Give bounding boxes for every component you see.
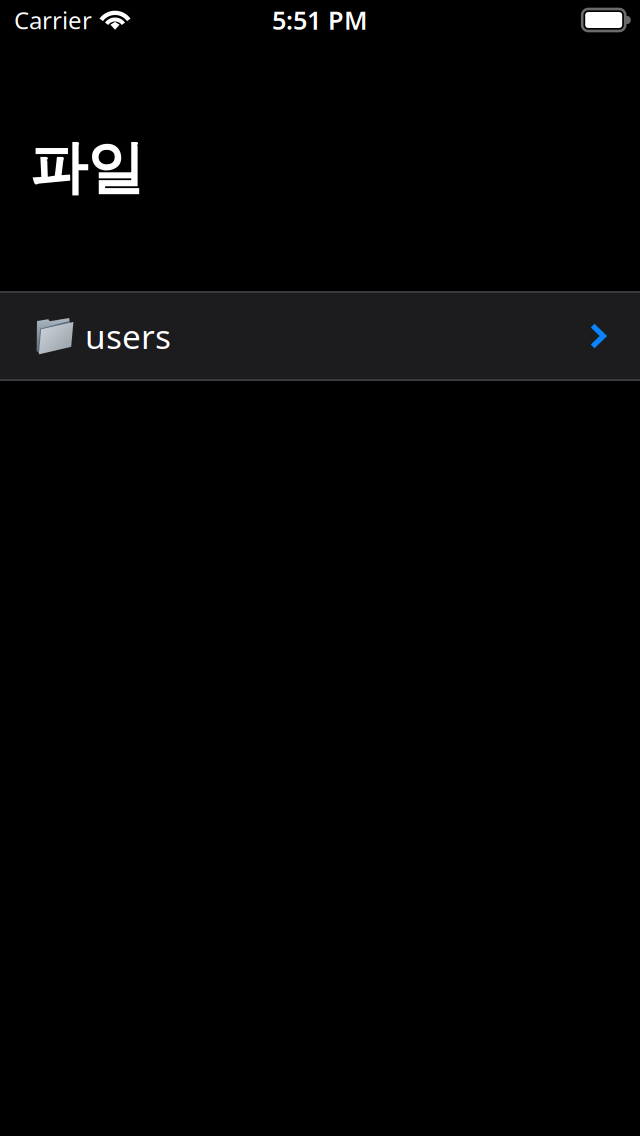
staticText: users <box>85 314 171 358</box>
staticText: 5:51 PM <box>272 3 368 37</box>
button[interactable]: users <box>0 293 640 379</box>
staticText: 파일 <box>30 133 144 203</box>
staticText: Carrier <box>14 4 92 36</box>
